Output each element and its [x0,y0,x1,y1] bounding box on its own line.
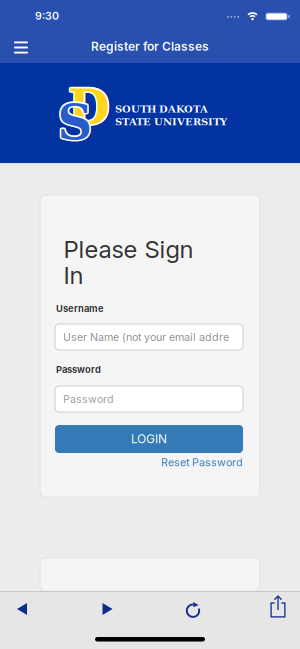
staticText: S [56,93,91,149]
staticText: D [69,78,111,134]
staticText: D [68,81,110,137]
staticText: D [70,79,112,136]
button[interactable]: User Name (not your email addre [55,324,243,350]
staticText: Please Sign [63,235,193,263]
staticText: S [59,93,94,149]
staticText: S [56,95,91,152]
staticText: 9:30 [35,9,59,22]
staticText: D [68,79,110,136]
button[interactable]: LOGIN [55,425,243,453]
staticText: D [66,79,108,136]
staticText: SOUTH DAKOTA [115,103,208,115]
button[interactable]: Reset Password [161,456,243,469]
button[interactable]: Reload [176,597,210,622]
staticText: Username [56,303,104,314]
staticText: User Name (not your email addre [63,331,229,343]
staticText: Password [63,393,114,405]
staticText: S [57,93,92,149]
staticText: STATE UNIVERSITY [115,116,227,127]
staticText: D [69,80,111,137]
staticText: S [56,94,91,151]
staticText: S [59,94,94,151]
button[interactable]: Back [5,597,39,621]
button[interactable]: Menu [0,32,28,61]
staticText: LOGIN [131,432,167,446]
staticText: D [68,78,110,134]
staticText: S [57,94,92,151]
button[interactable]: Share [260,592,295,620]
staticText: S [59,95,94,152]
staticText: Password [56,364,101,375]
staticText: Register for Classes [91,39,209,54]
staticText: Reset Password [161,456,243,469]
staticText: In [63,261,83,289]
button[interactable]: Password [55,386,243,412]
staticText: D [67,80,109,137]
staticText: D [67,78,109,134]
staticText: S [57,96,92,152]
button[interactable]: Forward [90,597,124,621]
